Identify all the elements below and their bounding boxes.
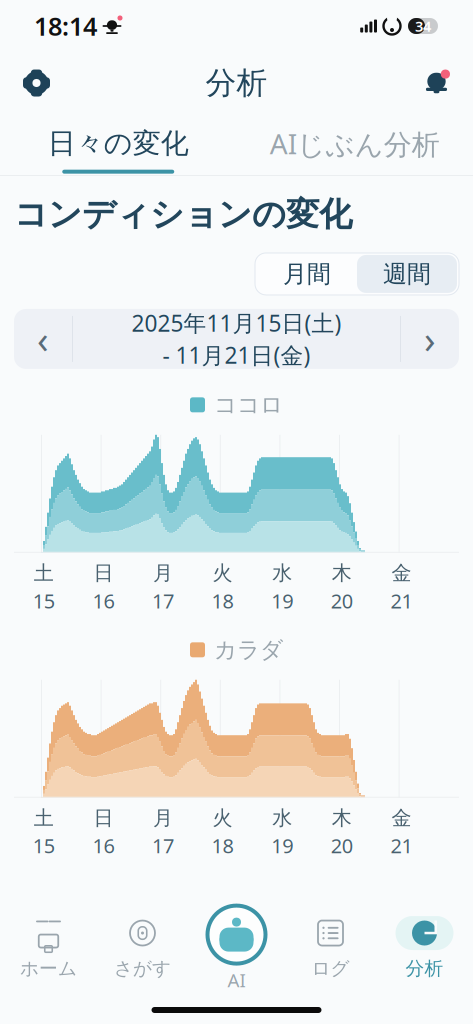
- staticText: 17: [152, 587, 174, 614]
- staticText: ‹: [37, 314, 49, 364]
- staticText: 日々の変化: [48, 126, 189, 161]
- staticText: 18: [212, 587, 234, 614]
- staticText: AIじぶん分析: [270, 125, 440, 162]
- staticText: 15: [33, 832, 55, 859]
- button[interactable]: AIじぶん分析: [236, 115, 473, 175]
- staticText: 分析: [405, 957, 443, 980]
- staticText: 18: [212, 832, 234, 859]
- staticText: コンディションの変化: [14, 194, 352, 235]
- staticText: 34: [415, 16, 431, 36]
- staticText: - 11月21日(金): [162, 340, 310, 370]
- staticText: 分析: [205, 64, 267, 102]
- staticText: 火: [213, 561, 233, 585]
- button[interactable]: Previous week: [14, 309, 72, 369]
- staticText: 16: [92, 587, 114, 614]
- button[interactable]: Notifications: [411, 57, 462, 108]
- staticText: 日: [93, 561, 113, 585]
- staticText: 月: [153, 561, 173, 585]
- staticText: 20: [331, 587, 353, 614]
- staticText: 水: [272, 806, 292, 830]
- staticText: 水: [272, 561, 292, 585]
- button[interactable]: AI: [189, 905, 283, 991]
- staticText: さがす: [114, 957, 171, 980]
- staticText: ›: [424, 314, 436, 364]
- staticText: 16: [92, 832, 114, 859]
- staticText: 火: [213, 806, 233, 830]
- button[interactable]: Next week: [401, 309, 459, 369]
- staticText: 月: [153, 806, 173, 830]
- staticText: 金: [391, 561, 411, 585]
- staticText: 木: [332, 561, 352, 585]
- staticText: ログ: [311, 957, 349, 980]
- staticText: 2025年11月15日(土): [131, 308, 341, 338]
- staticText: 17: [152, 832, 174, 859]
- staticText: 21: [390, 832, 412, 859]
- button[interactable]: Settings: [11, 57, 62, 108]
- staticText: 日: [93, 806, 113, 830]
- staticText: カラダ: [214, 636, 283, 664]
- button[interactable]: さがす: [95, 911, 189, 985]
- staticText: 15: [33, 587, 55, 614]
- button[interactable]: 日々の変化: [0, 116, 236, 174]
- staticText: 月間: [283, 259, 331, 289]
- staticText: 19: [271, 587, 293, 614]
- staticText: 週間: [383, 259, 431, 289]
- staticText: 19: [271, 832, 293, 859]
- staticText: ホーム: [20, 957, 77, 980]
- button[interactable]: 月間: [257, 255, 357, 293]
- staticText: 土: [34, 806, 54, 830]
- staticText: 20: [331, 832, 353, 859]
- staticText: 金: [391, 806, 411, 830]
- staticText: 土: [34, 561, 54, 585]
- staticText: 木: [332, 806, 352, 830]
- button[interactable]: ホーム: [1, 911, 95, 985]
- staticText: 21: [390, 587, 412, 614]
- staticText: ココロ: [214, 391, 283, 419]
- staticText: 18:14: [34, 9, 97, 43]
- button[interactable]: 週間: [357, 255, 457, 293]
- staticText: AI: [227, 968, 245, 992]
- button[interactable]: ログ: [283, 911, 377, 985]
- button[interactable]: 分析: [377, 911, 471, 985]
